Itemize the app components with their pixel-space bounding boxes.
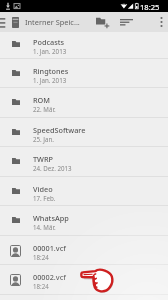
staticText: SpeedSoftware	[33, 125, 86, 135]
staticText: Podcasts	[33, 37, 65, 47]
button[interactable]: TWRP	[0, 147, 168, 177]
button[interactable]: ROM	[0, 88, 168, 118]
staticText: 1. Jan. 2013	[33, 47, 67, 55]
staticText: TWRP	[33, 154, 54, 164]
staticText: Video	[33, 184, 53, 194]
staticText: 24. Dez. 2013	[33, 164, 72, 172]
staticText: 22. Mär.	[33, 105, 56, 113]
button[interactable]: More options	[154, 12, 168, 32]
staticText: Ringtones	[33, 66, 69, 76]
staticText: 25. Jan.	[33, 135, 54, 143]
staticText: 18:25	[140, 2, 160, 12]
staticText: 00001.vcf	[33, 243, 66, 253]
button[interactable]: New folder	[93, 12, 112, 32]
button[interactable]: 00002.vcf	[0, 265, 168, 295]
button[interactable]: Video	[0, 177, 168, 206]
button[interactable]: Podcasts	[0, 32, 168, 59]
staticText: ROM	[33, 95, 51, 105]
staticText: 18:24	[33, 282, 49, 290]
staticText: WhatsApp	[33, 213, 69, 223]
button[interactable]: WhatsApp	[0, 206, 168, 236]
button[interactable]: Ringtones	[0, 59, 168, 88]
staticText: 14. Mär.	[33, 223, 56, 231]
button[interactable]: Open navigation drawer	[0, 12, 8, 32]
staticText: Interner Speic...	[25, 17, 80, 27]
staticText: 18:24	[33, 253, 49, 261]
staticText: 17. Feb.	[33, 194, 56, 202]
button[interactable]: SpeedSoftware	[0, 118, 168, 147]
button[interactable]: Sort	[116, 12, 136, 32]
button[interactable]: 00001.vcf	[0, 236, 168, 265]
staticText: 00002.vcf	[33, 272, 66, 282]
staticText: 1. Jan. 2013	[33, 76, 67, 84]
